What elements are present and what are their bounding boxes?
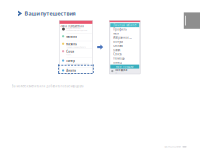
staticText: Мои — [113, 32, 119, 35]
staticText: завтра — [66, 73, 72, 75]
button[interactable]: Мои — [110, 31, 139, 36]
button[interactable]: Сочи — [59, 49, 93, 58]
button[interactable]: Багаж — [110, 48, 139, 52]
staticText: Избранное — — [113, 36, 132, 39]
staticText: Профиль — [113, 28, 126, 31]
staticText: ТЕХНОЛОГИИ — [164, 145, 181, 148]
staticText: Вы можете изменить или добавить новые ма… — [11, 84, 83, 88]
button[interactable]: Анапа — [59, 68, 93, 73]
button[interactable]: Мои поездки — [110, 65, 139, 68]
staticText: Ваши путешествия — [24, 10, 75, 17]
button[interactable]: Избранное — — [110, 36, 139, 40]
button[interactable]: Оплата — [110, 44, 139, 48]
staticText: Помощь — [113, 57, 124, 60]
staticText: Москва — [66, 35, 77, 38]
staticText: 4 сент. — [66, 54, 71, 56]
staticText: Поездки — [115, 68, 128, 72]
staticText: Бонусы — [113, 40, 123, 44]
staticText: Выберите поездку — [66, 27, 81, 29]
staticText: Мои поездки — [116, 65, 134, 68]
button[interactable]: Профиль — [110, 27, 139, 31]
staticText: Выход — [113, 61, 122, 64]
staticText: Связь — [113, 52, 121, 56]
staticText: Сочи — [66, 50, 74, 53]
button[interactable]: Связь — [110, 52, 139, 56]
staticText: Оплата — [113, 44, 122, 48]
button[interactable]: Питер — [59, 58, 93, 68]
button[interactable]: Помощь — [110, 56, 139, 60]
button[interactable]: Выберите поездку — [59, 26, 93, 34]
button[interactable]: Казань — [59, 41, 93, 49]
staticText: Багаж — [113, 48, 120, 52]
button[interactable]: Москва — [59, 34, 93, 41]
button[interactable]: Бонусы — [110, 40, 139, 44]
staticText: 12 июня — 18 июня, 2 билета — [66, 46, 86, 48]
staticText: чтобы посмотреть детали — [66, 30, 87, 31]
staticText: Казань — [66, 42, 77, 46]
button[interactable]: Выход — [110, 60, 139, 65]
staticText: 2 шт. — [115, 72, 118, 74]
staticText: Мои путешествия — [61, 24, 84, 28]
staticText: 3 февраля — 9 февраля, 1 билет — [66, 63, 89, 65]
staticText: Питер — [66, 59, 75, 63]
staticText: Личный кабинет — [113, 23, 136, 27]
staticText: Анапа — [66, 69, 76, 72]
